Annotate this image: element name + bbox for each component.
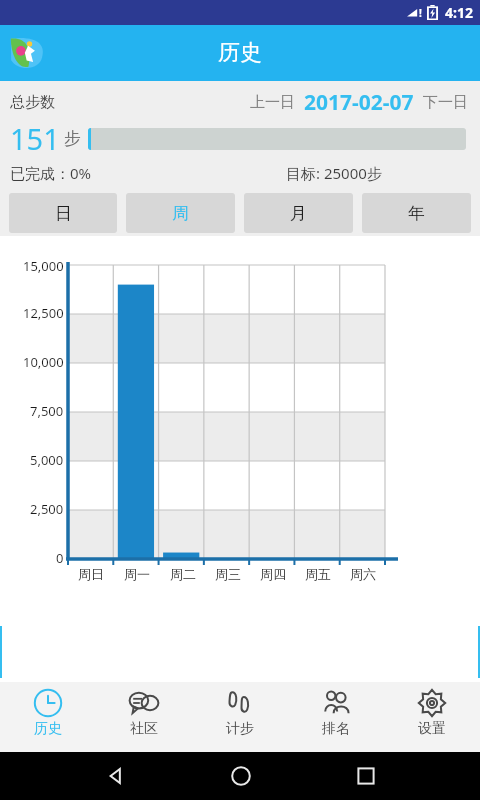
staticText: 目标: 25000步 <box>286 163 382 183</box>
button[interactable]: 社区 <box>96 682 192 752</box>
button[interactable]: App logo <box>9 35 45 71</box>
button[interactable]: Back <box>104 765 126 787</box>
staticText: 总步数 <box>10 93 55 112</box>
staticText: 月 <box>290 203 307 224</box>
staticText: 4:12 <box>445 3 473 22</box>
button[interactable]: Recents <box>356 766 376 786</box>
staticText: 0 <box>56 549 64 567</box>
staticText: ! <box>419 6 422 20</box>
button[interactable]: 排名 <box>288 682 384 752</box>
staticText: 上一日 <box>250 93 295 112</box>
staticText: 10,000 <box>23 353 64 371</box>
button[interactable]: 年 <box>362 193 471 233</box>
staticText: 周三 <box>215 566 241 582</box>
staticText: 已完成：0% <box>10 163 92 183</box>
staticText: 下一日 <box>423 93 468 112</box>
staticText: 周四 <box>260 566 286 582</box>
staticText: 2017-02-07 <box>304 88 414 117</box>
staticText: 历史 <box>34 720 62 738</box>
staticText: 15,000 <box>23 257 64 273</box>
staticText: 周二 <box>170 566 196 582</box>
staticText: 周六 <box>350 566 376 582</box>
button[interactable]: 设置 <box>384 682 480 752</box>
staticText: 年 <box>408 203 425 224</box>
staticText: 社区 <box>130 720 158 738</box>
staticText: 计步 <box>226 720 254 738</box>
button[interactable]: Home <box>230 765 252 787</box>
button[interactable]: 计步 <box>192 682 288 752</box>
staticText: 周 <box>172 203 189 224</box>
button[interactable]: 上一日 <box>248 90 297 115</box>
staticText: 日 <box>55 203 72 224</box>
staticText: 历史 <box>218 39 262 67</box>
staticText: 2,500 <box>30 500 64 518</box>
staticText: 设置 <box>418 720 446 738</box>
staticText: 排名 <box>322 720 350 738</box>
staticText: 步 <box>64 128 81 149</box>
staticText: 5,000 <box>30 451 64 469</box>
staticText: 151 <box>10 119 60 158</box>
staticText: 周五 <box>305 566 331 582</box>
staticText: 7,500 <box>30 402 64 420</box>
button[interactable]: 周 <box>126 193 235 233</box>
button[interactable]: 日 <box>9 193 117 233</box>
button[interactable]: 月 <box>244 193 353 233</box>
button[interactable]: 下一日 <box>421 90 470 115</box>
staticText: 周一 <box>124 566 150 582</box>
staticText: 周日 <box>78 566 104 582</box>
button[interactable]: 历史 <box>0 682 96 752</box>
staticText: 12,500 <box>23 304 64 322</box>
